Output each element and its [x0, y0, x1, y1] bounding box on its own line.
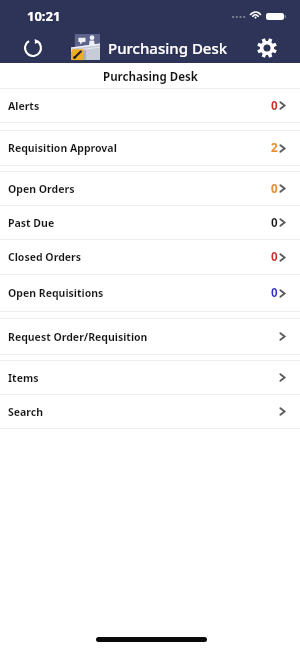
staticText: Purchasing Desk: [103, 69, 198, 85]
staticText: 0: [271, 215, 278, 231]
button[interactable]: Request Order/Requisition: [0, 319, 300, 354]
staticText: Past Due: [8, 216, 55, 230]
button[interactable]: Past Due: [0, 206, 300, 239]
staticText: 0: [271, 181, 278, 197]
button[interactable]: Items: [0, 361, 300, 394]
staticText: 0: [271, 285, 278, 301]
button[interactable]: Open Requisitions: [0, 275, 300, 311]
button[interactable]: Open Orders: [0, 172, 300, 205]
button[interactable]: Settings: [251, 29, 283, 61]
staticText: Items: [8, 371, 39, 385]
staticText: Alerts: [8, 99, 40, 113]
staticText: 10:21: [27, 7, 61, 25]
staticText: Purchasing Desk: [108, 38, 228, 58]
button[interactable]: Requisition Approval: [0, 131, 300, 165]
button[interactable]: Closed Orders: [0, 240, 300, 274]
staticText: Closed Orders: [8, 250, 81, 264]
staticText: Request Order/Requisition: [8, 330, 148, 344]
button[interactable]: Search: [0, 395, 300, 428]
staticText: Open Orders: [8, 182, 75, 196]
staticText: 2: [271, 140, 278, 156]
button[interactable]: Refresh: [18, 30, 48, 60]
button[interactable]: Alerts: [0, 89, 300, 122]
staticText: Requisition Approval: [8, 141, 117, 155]
staticText: Open Requisitions: [8, 286, 104, 300]
staticText: 0: [271, 249, 278, 265]
staticText: Search: [8, 405, 44, 419]
staticText: 0: [271, 98, 278, 114]
